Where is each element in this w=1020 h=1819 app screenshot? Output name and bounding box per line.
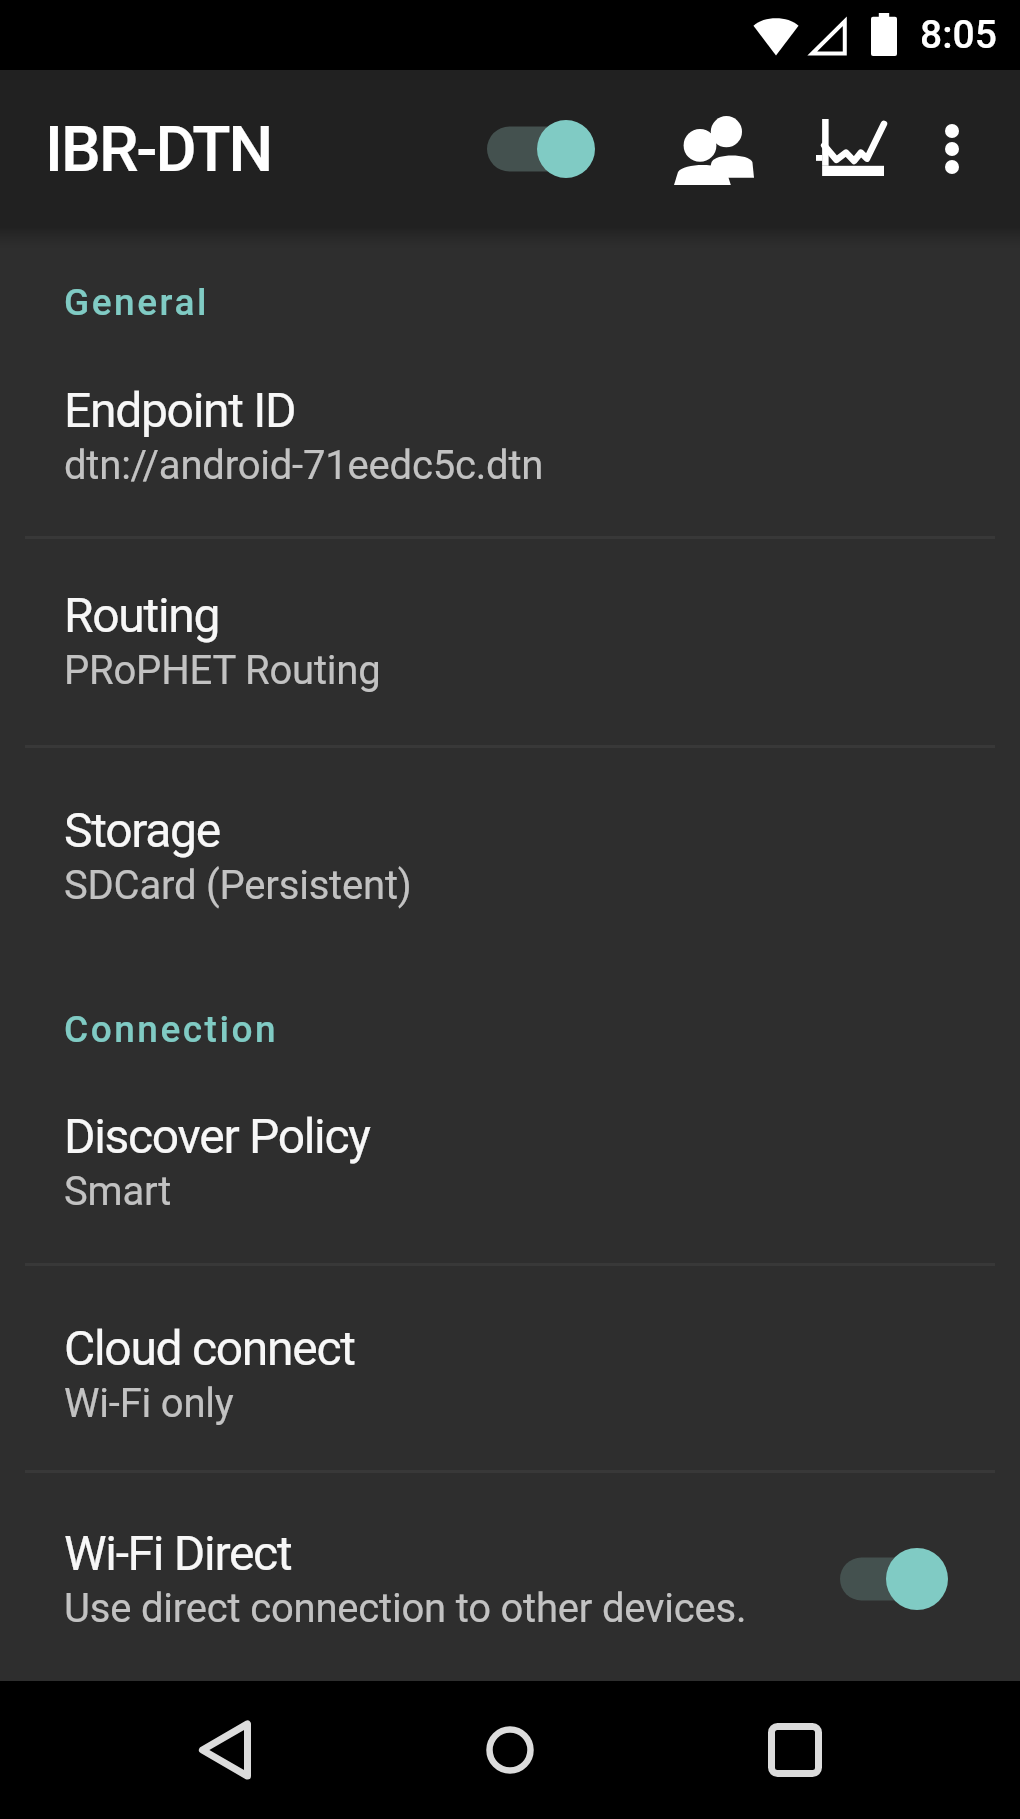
staticText: PRoPHET Routing <box>64 647 381 694</box>
staticText: Smart <box>64 1168 172 1215</box>
staticText: General <box>64 281 209 324</box>
button[interactable]: Wi-Fi Direct toggle <box>0 1474 1020 1683</box>
staticText: IBR-DTN <box>45 113 272 187</box>
staticText: Cloud connect <box>64 1320 355 1376</box>
button[interactable]: Home <box>450 1690 570 1810</box>
staticText: dtn://android-71eedc5c.dtn <box>64 442 544 489</box>
staticText: Connection <box>64 1008 279 1051</box>
button[interactable]: Back <box>165 1690 285 1810</box>
button[interactable]: Recent apps <box>735 1690 855 1810</box>
staticText: SDCard (Persistent) <box>64 862 412 909</box>
staticText: Endpoint ID <box>64 382 296 438</box>
button[interactable]: Neighbors <box>658 93 770 205</box>
button[interactable] <box>0 536 1020 745</box>
staticText: 8:05 <box>920 12 997 58</box>
staticText: Wi-Fi Direct <box>64 1525 292 1581</box>
staticText: Routing <box>64 587 220 643</box>
button[interactable] <box>0 751 1020 960</box>
button[interactable] <box>0 1269 1020 1478</box>
button[interactable] <box>0 331 1020 540</box>
staticText: Use direct connection to other devices. <box>64 1585 747 1632</box>
staticText: Wi-Fi only <box>64 1380 234 1427</box>
button[interactable]: Wi-Fi Direct toggle <box>815 1514 975 1644</box>
staticText: Storage <box>64 802 220 858</box>
button[interactable] <box>0 1057 1020 1266</box>
button[interactable]: Toggle daemon <box>472 94 612 204</box>
staticText: Discover Policy <box>64 1108 370 1164</box>
button[interactable]: Statistics <box>800 99 900 199</box>
button[interactable]: More options <box>902 99 1002 199</box>
